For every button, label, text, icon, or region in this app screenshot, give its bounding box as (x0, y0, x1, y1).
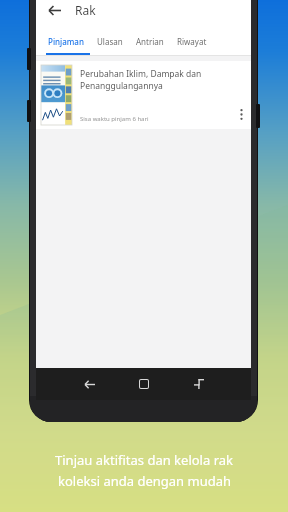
staticText: Penanggulangannya (80, 80, 163, 92)
staticText: Perubahan Iklim, Dampak dan (80, 68, 202, 80)
staticText: Ulasan (97, 36, 123, 47)
button[interactable]: More options (231, 61, 251, 129)
staticText: Riwayat (177, 36, 207, 47)
staticText: Pinjaman (48, 36, 84, 47)
button[interactable]: Riwayat (175, 31, 209, 52)
staticText: Antrian (136, 36, 164, 47)
button[interactable]: Pinjaman (46, 31, 86, 52)
button[interactable]: Recent apps (186, 371, 212, 397)
button[interactable]: Perubahan Iklim, Dampak dan (36, 61, 251, 129)
button[interactable]: Antrian (134, 31, 166, 52)
button[interactable]: Home (131, 371, 157, 397)
staticText: Tinjau aktifitas dan kelola rak (55, 451, 233, 469)
staticText: koleksi anda dengan mudah (58, 472, 231, 490)
button[interactable]: Back (76, 371, 102, 397)
button[interactable]: Back (41, 0, 67, 23)
button[interactable]: Ulasan (95, 31, 125, 52)
staticText: Sisa waktu pinjam 6 hari (80, 115, 149, 123)
staticText: Rak (75, 2, 96, 18)
